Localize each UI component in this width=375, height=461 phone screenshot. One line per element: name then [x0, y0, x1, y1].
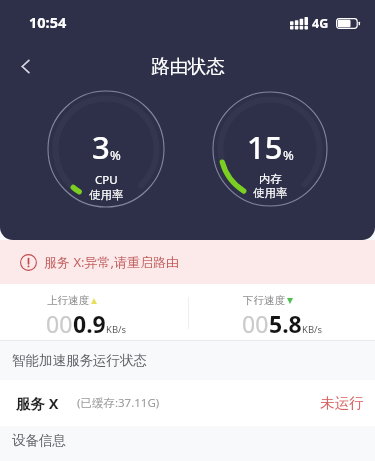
button[interactable]: 上行速度 [46, 294, 127, 339]
staticText: 内存 [259, 172, 282, 186]
button[interactable]: 下行速度 [242, 294, 323, 339]
staticText: 15 [247, 126, 283, 168]
staticText: KB/s [106, 323, 127, 336]
staticText: 未运行 [320, 394, 364, 412]
staticText: 0.9 [73, 308, 106, 339]
staticText: 智能加速服务运行状态 [12, 352, 147, 369]
staticText: 4G [312, 15, 329, 32]
button[interactable]: 服务 X:异常,请重启路由 [0, 240, 375, 284]
staticText: 上行速度 [47, 294, 89, 307]
staticText: CPU [95, 172, 118, 188]
staticText: 服务 X:异常,请重启路由 [44, 253, 179, 271]
staticText: 00 [46, 308, 73, 339]
button[interactable]: Back [7, 48, 43, 84]
staticText: 路由状态 [151, 55, 225, 78]
staticText: 10:54 [29, 12, 67, 32]
staticText: 5.8 [269, 308, 302, 339]
staticText: 设备信息 [12, 432, 66, 449]
staticText: 3 [92, 126, 110, 168]
staticText: % [110, 146, 121, 164]
staticText: KB/s [302, 323, 323, 336]
button[interactable]: 服务 X [0, 380, 375, 426]
staticText: 使用率 [253, 186, 288, 200]
staticText: (已缓存:37.11G) [77, 395, 160, 411]
staticText: 服务 X [16, 393, 59, 413]
staticText: 00 [242, 308, 269, 339]
staticText: 使用率 [89, 188, 124, 202]
staticText: % [283, 146, 294, 164]
staticText: 下行速度 [243, 294, 285, 307]
